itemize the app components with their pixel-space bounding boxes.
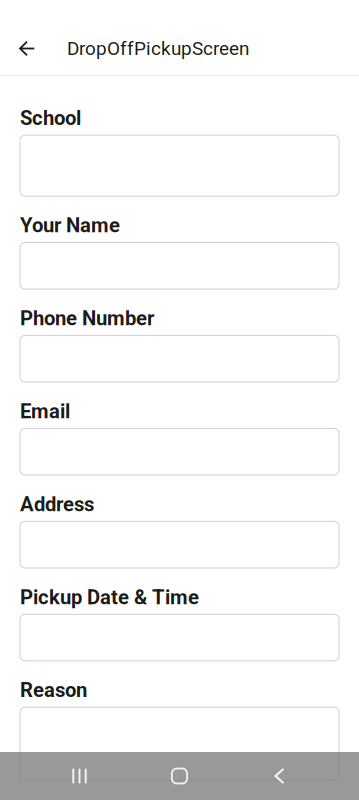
staticText: Pickup Date & Time — [20, 585, 199, 609]
button[interactable] — [20, 242, 339, 289]
staticText: Phone Number — [20, 306, 154, 330]
button[interactable]: Back — [0, 22, 54, 75]
button[interactable] — [20, 707, 339, 780]
staticText: School — [20, 106, 81, 130]
staticText: Address — [20, 492, 94, 516]
button[interactable] — [20, 614, 339, 661]
staticText: DropOffPickupScreen — [67, 37, 249, 60]
button[interactable]: Home — [129, 752, 229, 800]
button[interactable] — [20, 521, 339, 568]
staticText: Reason — [20, 678, 87, 702]
button[interactable] — [20, 428, 339, 475]
staticText: Email — [20, 399, 70, 423]
button[interactable] — [20, 135, 339, 196]
button[interactable]: Back — [229, 752, 329, 800]
staticText: Your Name — [20, 214, 120, 237]
button[interactable]: Recent apps — [29, 752, 129, 800]
button[interactable] — [20, 335, 339, 382]
